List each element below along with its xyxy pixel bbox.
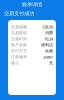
staticText: 备注 bbox=[11, 60, 19, 65]
staticText: 交易支付成功 bbox=[4, 10, 34, 17]
staticText: 订单编号 bbox=[11, 54, 27, 59]
staticText: 支付方式 bbox=[11, 48, 27, 53]
staticText: 商户名称 bbox=[11, 42, 27, 47]
staticText: 便利店 bbox=[41, 42, 53, 47]
staticText: 10:24 bbox=[44, 36, 53, 42]
staticText: 交易时间 bbox=[11, 36, 27, 41]
staticText: 消费 bbox=[45, 30, 53, 35]
staticText: 交易类型 bbox=[11, 30, 27, 35]
staticText: 20481 bbox=[43, 54, 53, 60]
staticText: 128.00 bbox=[42, 24, 53, 30]
staticText: 无 bbox=[49, 60, 53, 65]
staticText: 余额 bbox=[45, 48, 53, 53]
staticText: 交易金额 bbox=[11, 24, 27, 29]
staticText: 账单详情 bbox=[22, 1, 42, 8]
